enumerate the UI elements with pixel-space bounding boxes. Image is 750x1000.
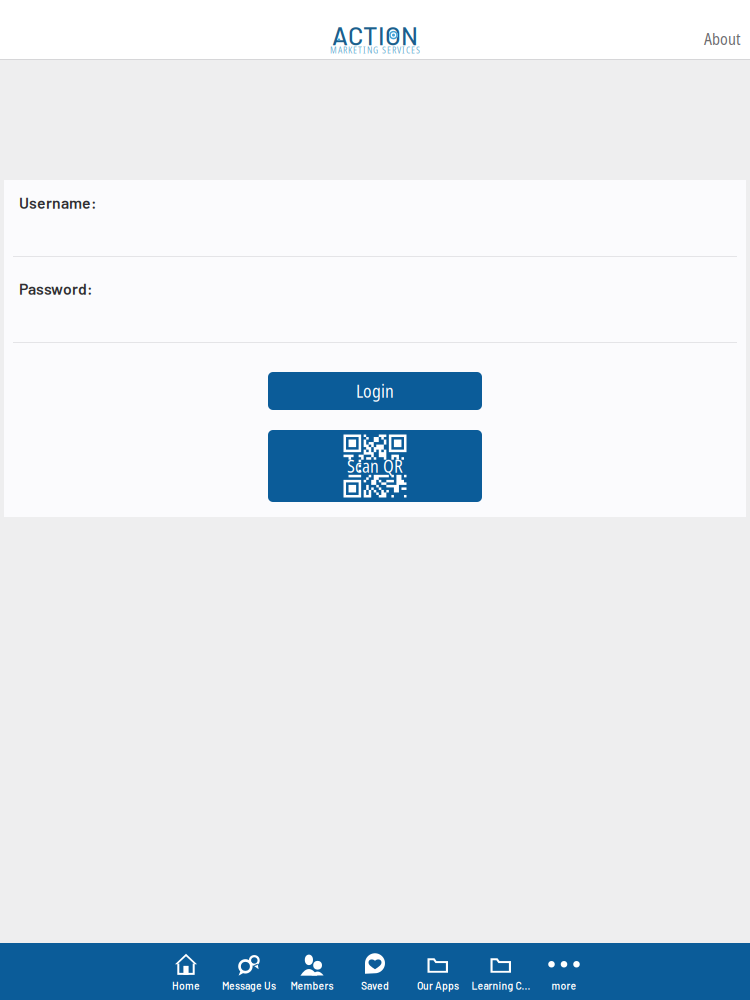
staticText: Scan QR bbox=[347, 454, 403, 478]
button[interactable]: About bbox=[692, 18, 750, 60]
button[interactable]: Saved bbox=[343, 943, 406, 1000]
staticText: Password: bbox=[19, 279, 93, 298]
button[interactable]: Home bbox=[154, 943, 217, 1000]
button[interactable]: Login bbox=[268, 372, 482, 410]
staticText: About bbox=[704, 28, 741, 50]
staticText: more bbox=[551, 979, 576, 992]
staticText: Learning C... bbox=[471, 979, 530, 992]
staticText: Message Us bbox=[222, 979, 276, 992]
staticText: Members bbox=[290, 979, 333, 992]
staticText: Home bbox=[172, 979, 200, 992]
button[interactable]: Members bbox=[280, 943, 343, 1000]
button[interactable]: Our Apps bbox=[406, 943, 469, 1000]
staticText: MARKETING SERVICES bbox=[330, 44, 420, 56]
staticText: ACTION bbox=[332, 20, 418, 50]
staticText: Saved bbox=[361, 979, 389, 992]
button[interactable]: Scan QR bbox=[268, 430, 482, 502]
button[interactable]: Learning C... bbox=[469, 943, 532, 1000]
staticText: Our Apps bbox=[417, 979, 459, 992]
staticText: Login bbox=[356, 379, 394, 403]
staticText: Username: bbox=[19, 193, 97, 212]
button[interactable]: Message Us bbox=[217, 943, 280, 1000]
button[interactable]: more bbox=[532, 943, 595, 1000]
